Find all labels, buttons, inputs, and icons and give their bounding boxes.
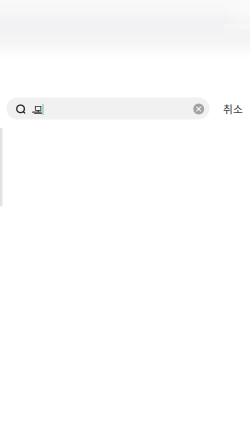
staticText: 취소 [223, 101, 243, 116]
button[interactable]: Clear text [193, 104, 204, 114]
button[interactable]: 취소 [223, 101, 243, 115]
staticText: 모 [34, 102, 43, 117]
